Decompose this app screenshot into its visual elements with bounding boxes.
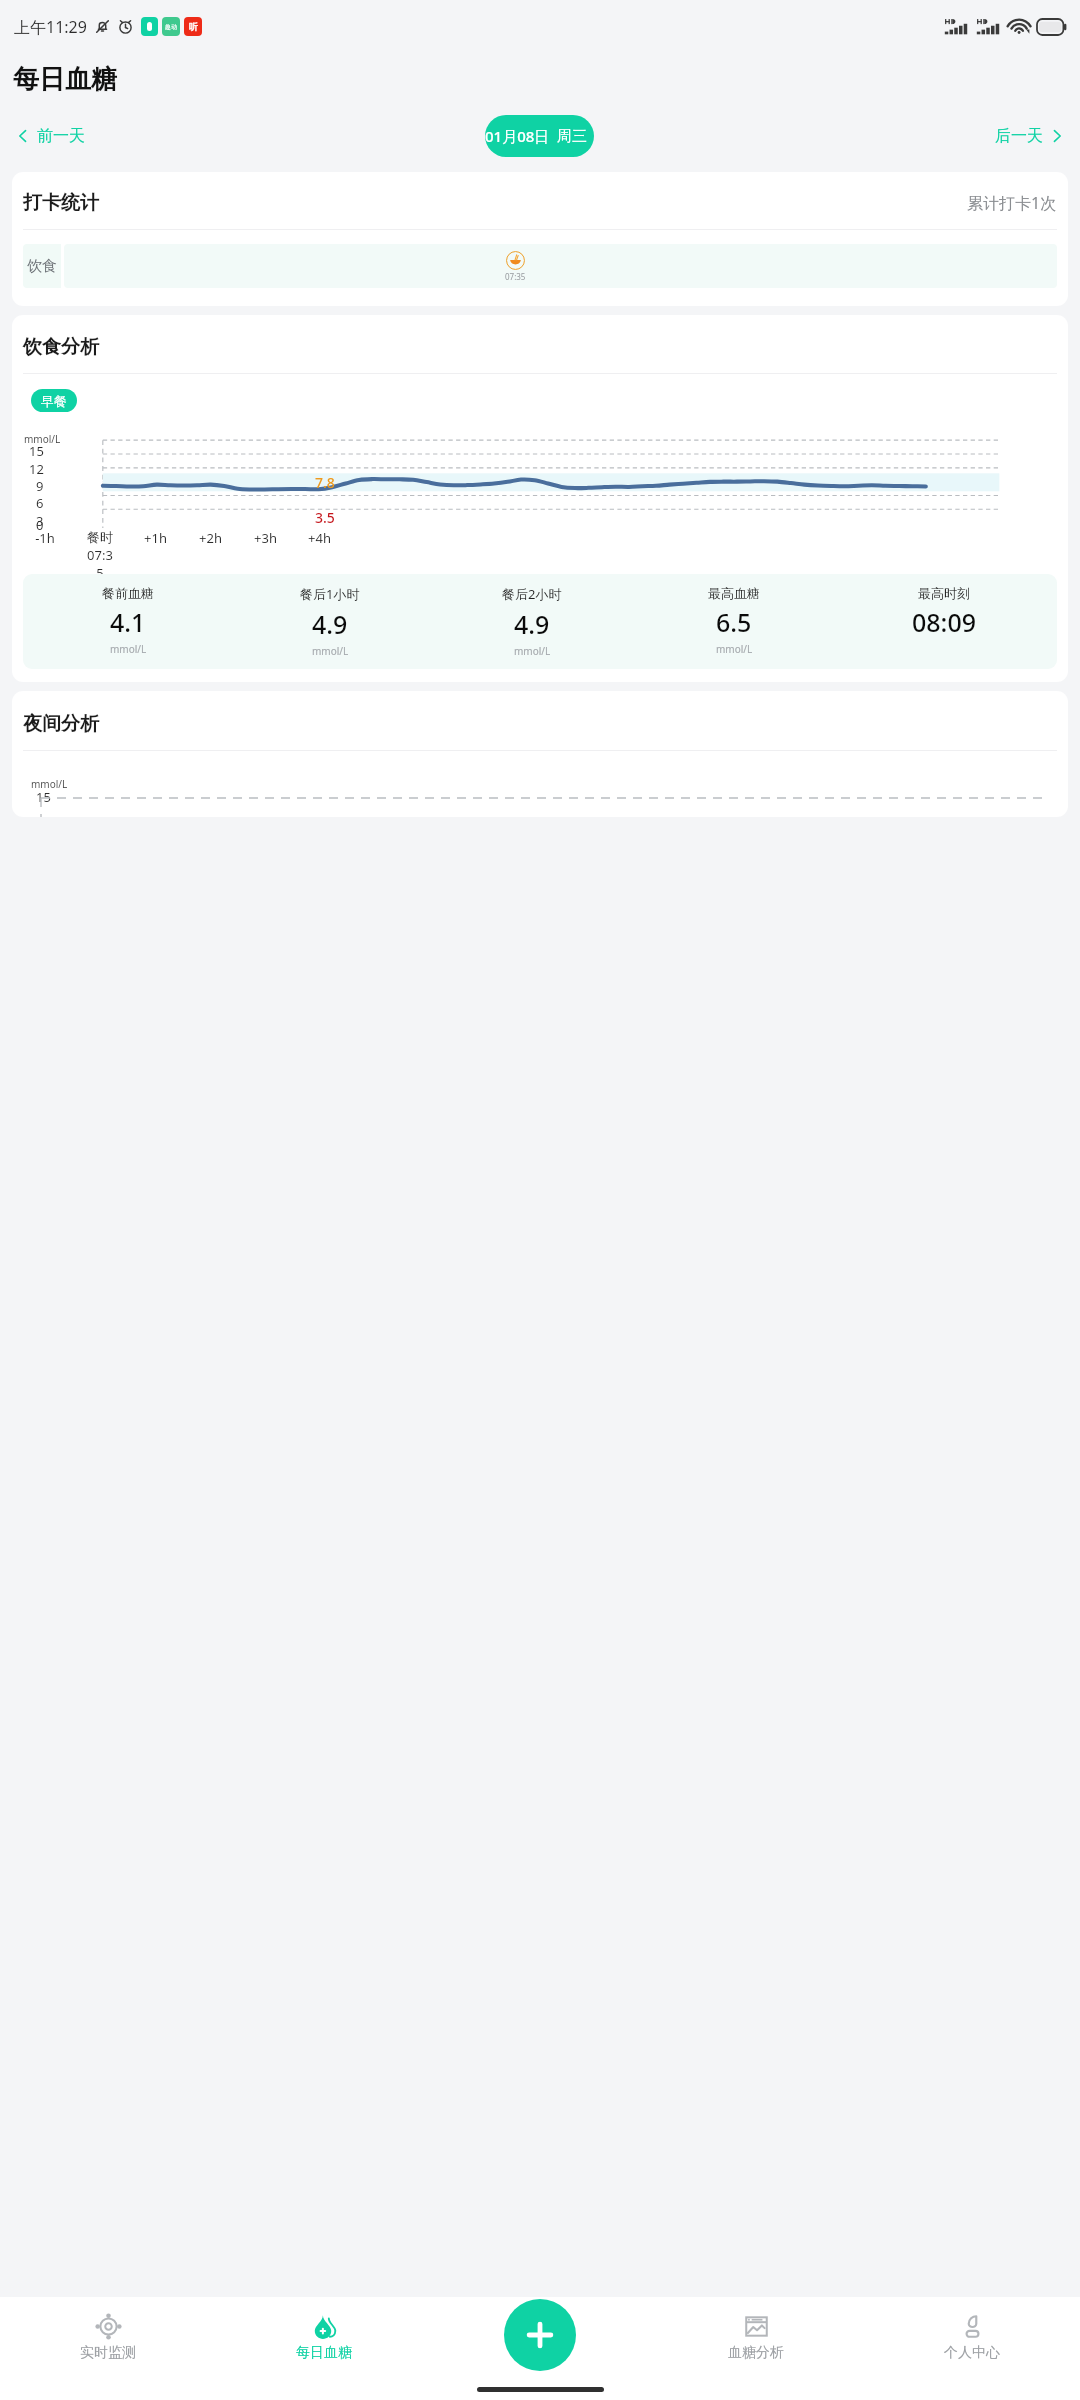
staticText: 实时监测 bbox=[80, 2344, 136, 2362]
staticText: 4.1 bbox=[110, 605, 146, 639]
button[interactable]: 每日血糖 bbox=[216, 2297, 432, 2375]
staticText: 前一天 bbox=[37, 126, 85, 146]
staticText: 打卡统计 bbox=[23, 191, 99, 215]
staticText: 08:09 bbox=[912, 605, 977, 639]
staticText: 6 bbox=[36, 494, 44, 512]
button[interactable]: 个人中心 bbox=[864, 2297, 1080, 2375]
staticText: 3 bbox=[36, 512, 44, 530]
button[interactable]: 后一天 bbox=[991, 120, 1069, 152]
staticText: 累计打卡1次 bbox=[967, 192, 1057, 214]
staticText: 4.9 bbox=[312, 607, 348, 641]
staticText: mmol/L bbox=[24, 432, 61, 446]
staticText: 餐时 bbox=[87, 529, 113, 545]
staticText: 饮食 bbox=[27, 257, 57, 276]
button[interactable]: 实时监测 bbox=[0, 2297, 216, 2375]
staticText: 最高时刻 bbox=[918, 585, 970, 601]
staticText: 每日血糖 bbox=[13, 63, 117, 96]
staticText: 每日血糖 bbox=[296, 2344, 352, 2362]
staticText: 6.5 bbox=[716, 605, 752, 639]
staticText: mmol/L bbox=[31, 777, 68, 791]
staticText: 饮食分析 bbox=[23, 335, 99, 359]
staticText: 夜间分析 bbox=[23, 712, 99, 736]
staticText: +4h bbox=[308, 529, 331, 547]
button[interactable]: 添加记录 bbox=[504, 2299, 576, 2371]
staticText: 个人中心 bbox=[944, 2344, 1000, 2362]
staticText: 后一天 bbox=[995, 126, 1043, 146]
staticText: mmol/L bbox=[110, 642, 147, 656]
staticText: 07:35 bbox=[84, 546, 116, 580]
button[interactable]: 01月08日 bbox=[485, 115, 594, 157]
staticText: 4.9 bbox=[514, 607, 550, 641]
staticText: 早餐 bbox=[41, 393, 67, 409]
staticText: +2h bbox=[199, 529, 222, 547]
staticText: 最高血糖 bbox=[708, 585, 760, 601]
staticText: 0 bbox=[36, 516, 44, 534]
staticText: 听 bbox=[189, 21, 198, 32]
button[interactable]: 早餐 bbox=[31, 389, 77, 412]
staticText: +1h bbox=[144, 529, 167, 547]
staticText: mmol/L bbox=[312, 644, 349, 658]
staticText: 3.5 bbox=[315, 508, 335, 527]
staticText: +3h bbox=[254, 529, 277, 547]
button[interactable]: 血糖分析 bbox=[648, 2297, 864, 2375]
staticText: mmol/L bbox=[514, 644, 551, 658]
button[interactable]: 前一天 bbox=[11, 120, 89, 152]
staticText: 上午11:29 bbox=[14, 16, 87, 38]
staticText: 07:35 bbox=[505, 271, 526, 282]
staticText: 15 bbox=[29, 442, 44, 460]
staticText: 12 bbox=[29, 460, 44, 478]
staticText: 餐前血糖 bbox=[102, 585, 154, 601]
staticText: 血糖分析 bbox=[728, 2344, 784, 2362]
staticText: 趣动 bbox=[165, 23, 177, 31]
staticText: 餐后1小时 bbox=[300, 585, 360, 603]
staticText: 餐后2小时 bbox=[502, 585, 562, 603]
staticText: -1h bbox=[35, 529, 55, 547]
staticText: 7.8 bbox=[315, 473, 335, 492]
staticText: 15 bbox=[36, 788, 51, 806]
staticText: mmol/L bbox=[716, 642, 753, 656]
staticText: 01月08日 bbox=[485, 126, 550, 146]
staticText: 9 bbox=[36, 477, 44, 495]
staticText: 周三 bbox=[557, 127, 587, 146]
